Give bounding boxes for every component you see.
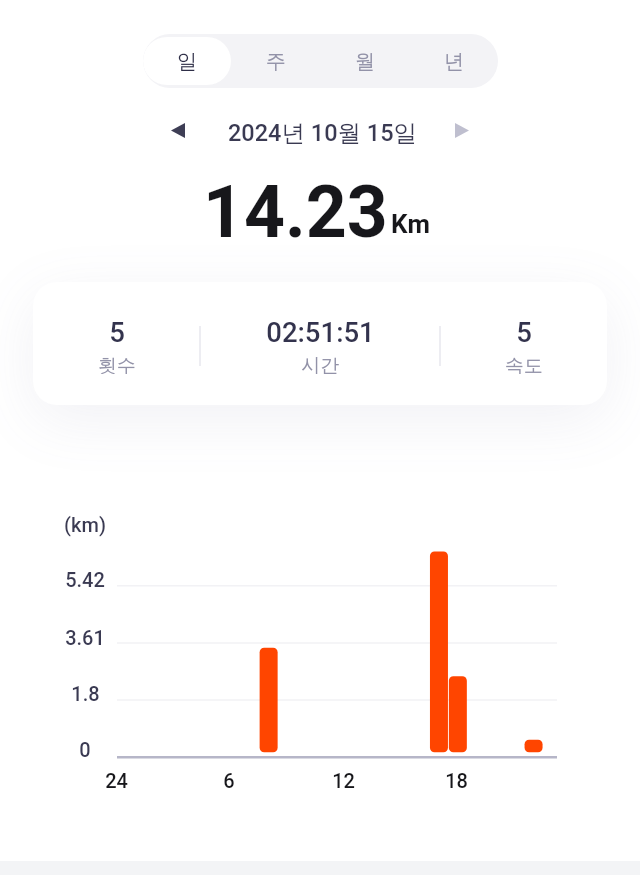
- button[interactable]: Next day: [442, 110, 482, 150]
- staticText: 5: [516, 316, 532, 348]
- staticText: 24: [105, 769, 128, 792]
- button[interactable]: 년: [409, 37, 498, 85]
- staticText: 주: [266, 49, 286, 74]
- staticText: 02:51:51: [266, 316, 375, 348]
- staticText: 6: [223, 769, 235, 792]
- button[interactable]: Previous day: [158, 110, 198, 150]
- staticText: 2024년 10월 15일: [228, 118, 418, 148]
- staticText: 3.61: [65, 626, 105, 649]
- button[interactable]: 주: [231, 37, 320, 85]
- staticText: 0: [79, 738, 91, 761]
- staticText: 일: [177, 49, 197, 74]
- staticText: 14.23: [203, 171, 388, 255]
- staticText: 12: [332, 769, 355, 792]
- staticText: 월: [355, 49, 375, 74]
- staticText: 18: [445, 769, 468, 792]
- staticText: (km): [64, 513, 106, 536]
- staticText: 횟수: [98, 354, 136, 378]
- staticText: 시간: [301, 354, 339, 378]
- staticText: 1.8: [71, 682, 100, 705]
- staticText: 5: [109, 316, 125, 348]
- staticText: Km: [391, 209, 431, 239]
- button[interactable]: 일: [143, 37, 231, 85]
- button[interactable]: 02:51:51: [200, 282, 440, 405]
- button[interactable]: 5: [33, 282, 200, 405]
- button[interactable]: 5: [440, 282, 607, 405]
- button[interactable]: 월: [320, 37, 409, 85]
- staticText: 5.42: [65, 568, 105, 591]
- staticText: 년: [444, 49, 464, 74]
- staticText: 속도: [505, 354, 543, 378]
